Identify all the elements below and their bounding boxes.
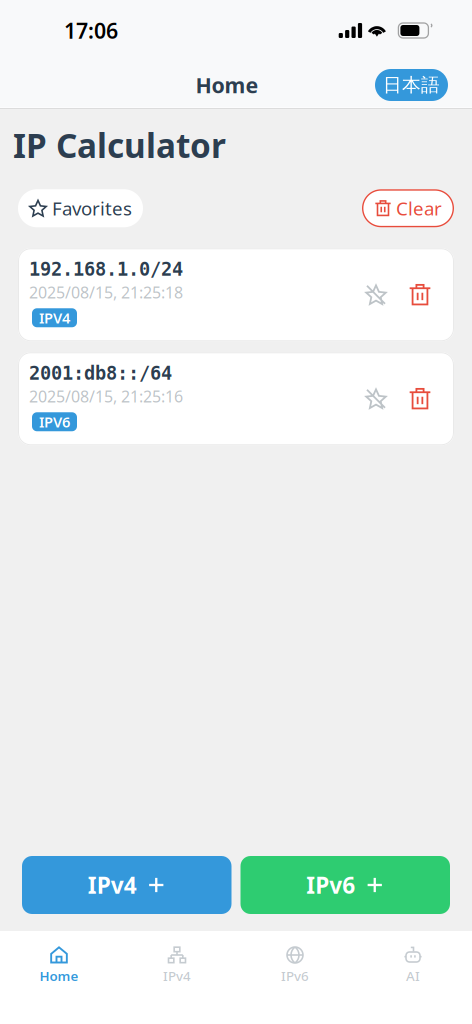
button[interactable]: Clear [362, 189, 454, 227]
button[interactable]: Delete entry [398, 248, 442, 341]
button[interactable]: IPv6 [236, 931, 354, 995]
staticText: IPv6 [281, 967, 309, 985]
button[interactable]: Favorites [18, 189, 143, 227]
staticText: IPv6 [306, 870, 355, 900]
button[interactable]: IPv6 [240, 856, 450, 914]
staticText: 192.168.1.0/24 [29, 259, 183, 280]
staticText: 2025/08/15, 21:25:18 [29, 282, 183, 303]
staticText: 2025/08/15, 21:25:16 [29, 386, 183, 407]
button[interactable]: IPv4 [22, 856, 231, 914]
staticText: IPV6 [39, 412, 70, 431]
button[interactable]: 日本語 [375, 69, 448, 101]
staticText: Home [39, 967, 78, 985]
staticText: IPv4 [88, 870, 137, 900]
staticText: 日本語 [383, 73, 440, 96]
button[interactable]: Delete entry [398, 352, 442, 445]
button[interactable]: IPv4 [118, 931, 236, 995]
staticText: Clear [396, 196, 442, 221]
staticText: 2001:db8::/64 [29, 363, 172, 384]
staticText: AI [406, 967, 420, 985]
button[interactable]: Toggle favorite [354, 352, 398, 445]
button[interactable]: Toggle favorite [354, 248, 398, 341]
staticText: IPV4 [39, 308, 70, 327]
staticText: 17:06 [64, 16, 118, 45]
staticText: IP Calculator [13, 123, 226, 167]
staticText: Favorites [52, 196, 132, 221]
staticText: Home [195, 71, 258, 99]
button[interactable]: AI [354, 931, 472, 995]
staticText: IPv4 [163, 967, 191, 985]
button[interactable]: Home [0, 931, 118, 995]
